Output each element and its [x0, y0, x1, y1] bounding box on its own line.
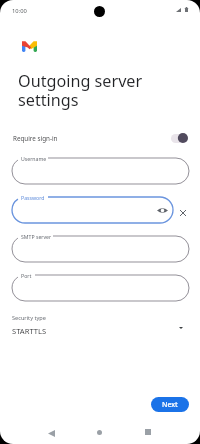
staticText: Username [21, 155, 47, 162]
button[interactable]: Home [97, 430, 102, 435]
button[interactable]: Next [151, 397, 189, 412]
staticText: Security type [12, 314, 46, 322]
staticText: 10:00 [12, 7, 27, 15]
button[interactable]: Back [48, 430, 55, 437]
staticText: Port [21, 272, 32, 279]
button[interactable]: Port [12, 275, 189, 301]
button[interactable]: Show password [157, 207, 168, 214]
button[interactable]: Require sign-in [0, 130, 200, 146]
staticText: Password [21, 194, 45, 201]
staticText: Require sign-in [13, 134, 58, 143]
staticText: SMTP server [21, 233, 52, 240]
button[interactable]: Username [12, 158, 189, 184]
button[interactable]: Clear [177, 207, 189, 219]
staticText: Outgoing server settings [18, 70, 143, 110]
staticText: Next [162, 400, 178, 410]
button[interactable]: Security type [0, 310, 200, 340]
button[interactable]: Password [12, 197, 173, 223]
staticText: STARTTLS [12, 326, 47, 336]
button[interactable]: SMTP server [12, 236, 189, 262]
